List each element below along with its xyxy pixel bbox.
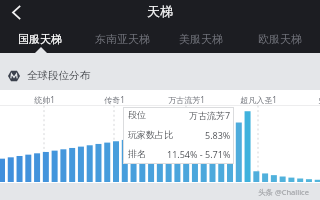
staticText: 全球段位分布 [27, 69, 90, 82]
staticText: 超凡入圣1 [240, 94, 277, 105]
button[interactable]: 国服天梯 [17, 31, 63, 47]
staticText: 美服天梯 [179, 32, 223, 46]
button[interactable]: 美服天梯 [178, 31, 224, 47]
staticText: 5.83% [205, 129, 231, 141]
staticText: 国服天梯 [18, 32, 62, 46]
staticText: 统帅1 [34, 94, 55, 105]
staticText: 排名 [128, 148, 146, 159]
staticText: 欧服天梯 [258, 32, 302, 46]
staticText: 11.54% - 5.71% [167, 148, 231, 160]
staticText: 头条 @Challice [258, 187, 309, 197]
staticText: 史诗1 [318, 94, 320, 105]
staticText: 东南亚天梯 [95, 32, 150, 46]
staticText: 玩家数占比 [128, 129, 173, 140]
staticText: 传奇1 [104, 94, 125, 105]
button[interactable]: Back [4, 0, 28, 24]
staticText: 万古流芳7 [189, 109, 231, 121]
staticText: 天梯 [147, 3, 173, 19]
staticText: 万古流芳1 [168, 94, 205, 105]
button[interactable]: 东南亚天梯 [94, 31, 151, 47]
button[interactable]: 欧服天梯 [257, 31, 303, 47]
staticText: 段位 [128, 109, 146, 120]
